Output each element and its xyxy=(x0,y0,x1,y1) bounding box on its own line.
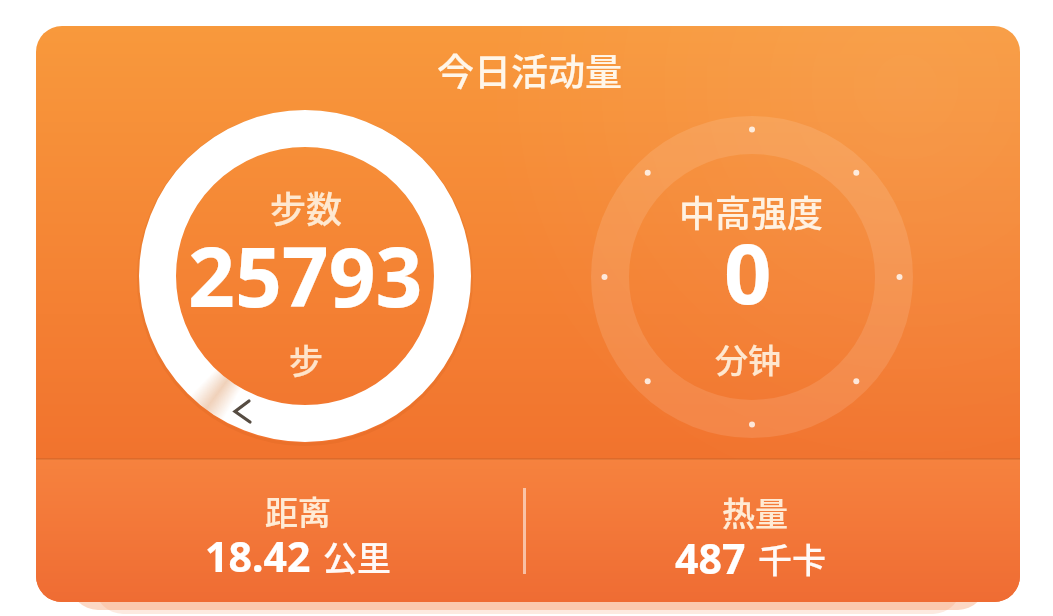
staticText: 中高强度 xyxy=(679,185,824,237)
button[interactable] xyxy=(120,462,476,598)
button[interactable] xyxy=(155,126,455,426)
staticText: 分钟 xyxy=(715,335,781,383)
staticText: 千卡 xyxy=(758,534,826,583)
staticText: 距离 xyxy=(265,487,331,535)
button[interactable] xyxy=(580,462,936,598)
staticText: 步 xyxy=(289,335,323,384)
staticText: 热量 xyxy=(722,488,788,536)
staticText: 18.42 xyxy=(205,528,311,584)
staticText: 公里 xyxy=(323,532,391,581)
staticText: 0 xyxy=(724,215,772,328)
staticText: 487 xyxy=(675,530,746,586)
button[interactable] xyxy=(610,135,894,419)
staticText: 25793 xyxy=(188,219,423,331)
staticText: 今日活动量 xyxy=(437,43,622,97)
staticText: 步数 xyxy=(270,181,343,233)
